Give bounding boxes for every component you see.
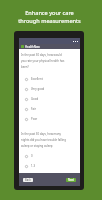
button[interactable]: Fair — [19, 104, 80, 114]
staticText: In the past 30 days, how many nights did… — [21, 132, 66, 148]
button[interactable]: Poor — [19, 114, 80, 124]
staticText: Back — [25, 178, 31, 182]
button[interactable]: Back — [23, 178, 33, 182]
staticText: 0 — [31, 154, 33, 158]
staticText: Next — [68, 178, 74, 182]
button[interactable]: Excellent — [19, 74, 80, 84]
staticText: Enhance your care through measurements — [18, 9, 81, 24]
button[interactable]: Good — [19, 94, 80, 104]
staticText: HealthNow — [25, 45, 40, 49]
staticText: Poor — [31, 117, 38, 121]
button[interactable]: 0 — [19, 151, 80, 161]
button[interactable]: 1-3 — [19, 161, 80, 171]
staticText: In the past 30 days, how would you rate … — [21, 53, 65, 69]
button[interactable]: Next — [66, 178, 76, 182]
staticText: Fair — [31, 107, 36, 111]
staticText: Very good — [31, 87, 45, 91]
staticText: Good — [31, 97, 39, 101]
staticText: 1-3 — [31, 164, 36, 168]
button[interactable]: Very good — [19, 84, 80, 94]
staticText: Excellent — [31, 77, 43, 81]
